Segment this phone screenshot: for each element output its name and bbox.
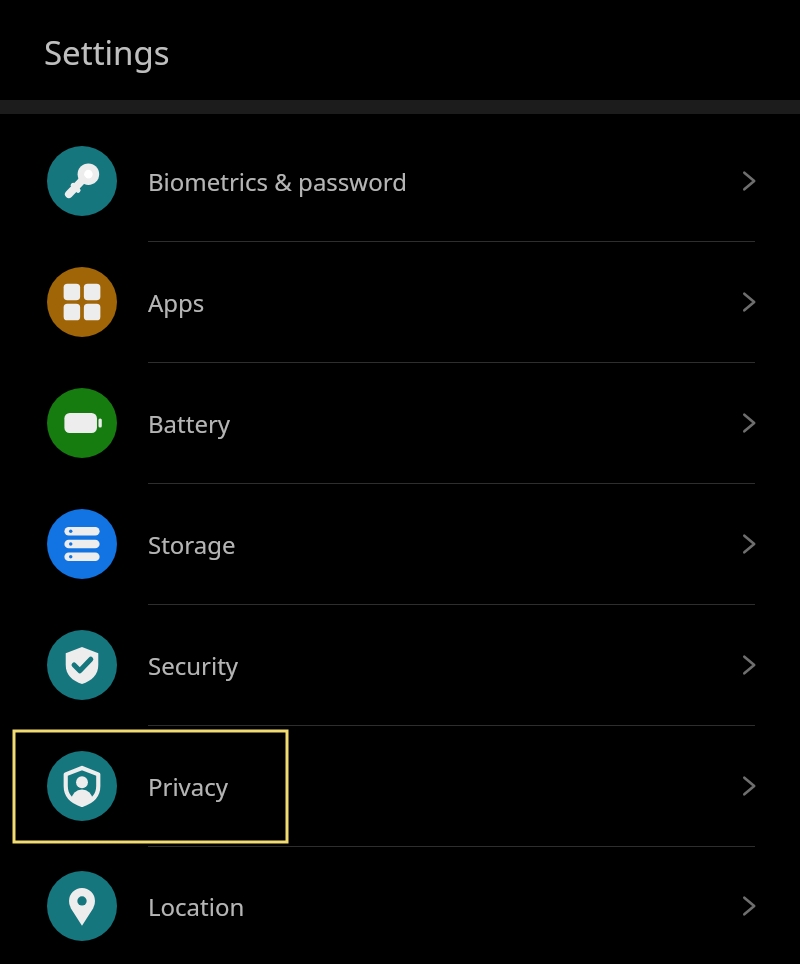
button[interactable]: Location <box>0 847 800 964</box>
button[interactable]: Storage <box>0 484 800 604</box>
button[interactable]: Security <box>0 605 800 725</box>
staticText: Location <box>148 890 245 923</box>
staticText: Security <box>148 649 239 682</box>
button[interactable]: Battery <box>0 363 800 483</box>
button[interactable]: Privacy <box>0 726 800 846</box>
staticText: Storage <box>148 528 236 561</box>
staticText: Biometrics & password <box>148 165 407 198</box>
button[interactable]: Biometrics & password <box>0 121 800 241</box>
staticText: Privacy <box>148 770 229 803</box>
staticText: Battery <box>148 407 231 440</box>
staticText: Settings <box>44 30 170 75</box>
button[interactable]: Apps <box>0 242 800 362</box>
staticText: Apps <box>148 286 205 319</box>
